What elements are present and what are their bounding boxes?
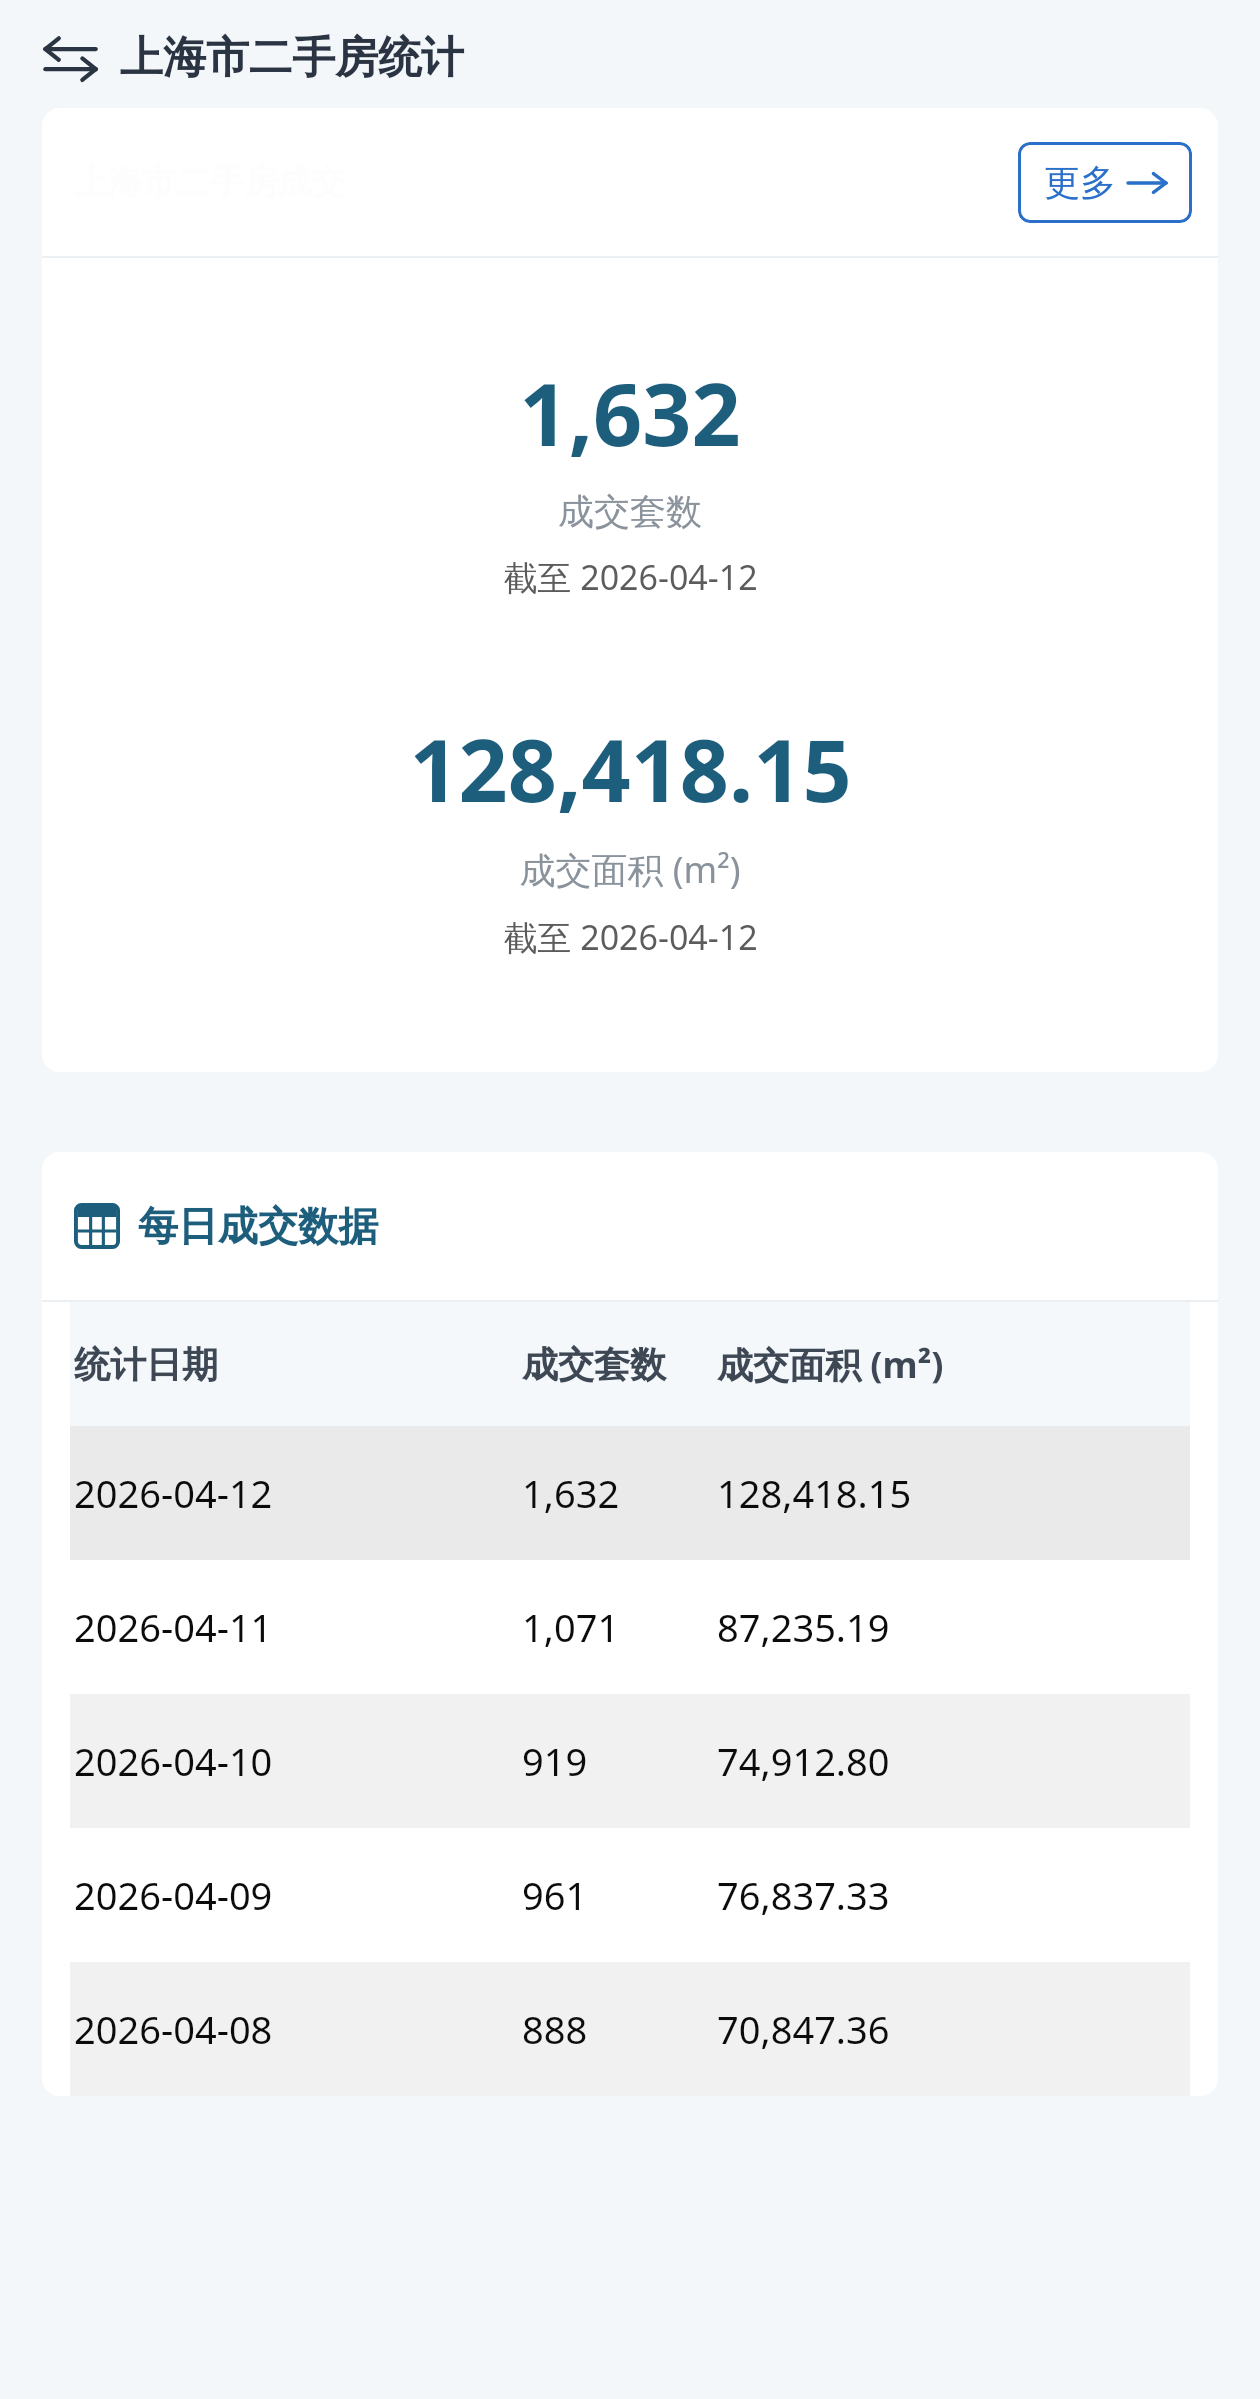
staticText: 961 <box>522 1869 588 1921</box>
staticText: 成交套数 <box>522 1342 666 1387</box>
button[interactable]: 更多 <box>1018 142 1192 223</box>
button[interactable]: 2026-04-11 <box>70 1560 1190 1694</box>
staticText: 2026-04-12 <box>74 1467 273 1519</box>
button[interactable]: 2026-04-12 <box>70 1426 1190 1560</box>
staticText: 上海市二手房统计 <box>120 31 464 85</box>
staticText: 128,418.15 <box>717 1467 912 1519</box>
staticText: 1,632 <box>519 354 741 471</box>
staticText: 1,071 <box>522 1601 620 1653</box>
staticText: 成交套数 <box>558 489 702 534</box>
staticText: 87,235.19 <box>717 1601 890 1653</box>
staticText: 2026-04-11 <box>74 1601 273 1653</box>
staticText: 2026-04-08 <box>74 2003 273 2055</box>
staticText: 2026-04-09 <box>74 1869 273 1921</box>
button[interactable]: 2026-04-09 <box>70 1828 1190 1962</box>
staticText: 76,837.33 <box>717 1869 890 1921</box>
staticText: 74,912.80 <box>717 1735 890 1787</box>
staticText: 成交面积 (m²) <box>519 845 741 894</box>
staticText: 919 <box>522 1735 588 1787</box>
staticText: 每日成交数据 <box>138 1201 378 1251</box>
button[interactable]: 2026-04-10 <box>70 1694 1190 1828</box>
staticText: 统计日期 <box>74 1342 218 1387</box>
other: Swap <box>42 30 98 86</box>
button[interactable]: 2026-04-08 <box>70 1962 1190 2096</box>
staticText: 截至 2026-04-12 <box>503 554 758 600</box>
staticText: 128,418.15 <box>409 710 852 827</box>
staticText: 2026-04-10 <box>74 1735 273 1787</box>
staticText: 截至 2026-04-12 <box>503 914 758 960</box>
staticText: 成交面积 (m²) <box>717 1340 944 1389</box>
staticText: 更多 <box>1044 160 1116 205</box>
staticText: 1,632 <box>522 1467 620 1519</box>
staticText: 888 <box>522 2003 588 2055</box>
staticText: 70,847.36 <box>717 2003 890 2055</box>
